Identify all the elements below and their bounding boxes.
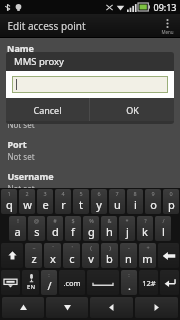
button[interactable]: z xyxy=(25,243,42,268)
staticText: d xyxy=(52,224,59,239)
staticText: Not set xyxy=(7,151,35,162)
staticText: APN xyxy=(7,74,27,86)
button[interactable]: x xyxy=(44,243,61,268)
staticText: q xyxy=(6,197,13,212)
staticText: y xyxy=(96,197,102,212)
button[interactable]: down xyxy=(46,297,88,318)
button[interactable]: enter xyxy=(160,270,179,295)
button[interactable]: e xyxy=(37,189,53,214)
staticText: / xyxy=(162,217,165,224)
button[interactable]: / xyxy=(41,270,57,295)
button[interactable]: m xyxy=(139,243,156,268)
button[interactable]: a xyxy=(9,216,26,241)
staticText: 3 xyxy=(43,190,47,197)
button[interactable]: left xyxy=(90,297,133,318)
button[interactable]: g xyxy=(83,216,99,241)
staticText: @ xyxy=(34,217,39,224)
button[interactable]: Menu xyxy=(154,14,180,38)
staticText: g xyxy=(88,224,95,239)
staticText: x xyxy=(50,251,56,266)
button[interactable]: f xyxy=(65,216,81,241)
staticText: f xyxy=(71,224,75,239)
staticText: 6 xyxy=(97,190,101,197)
staticText: c xyxy=(69,251,75,266)
staticText: 8 xyxy=(133,190,137,197)
button[interactable]: Username xyxy=(0,166,180,198)
button[interactable]: j xyxy=(119,216,135,241)
button[interactable]: l xyxy=(155,216,171,241)
button[interactable]: . xyxy=(121,270,137,295)
button[interactable]: d xyxy=(47,216,63,241)
staticText: ~ xyxy=(32,244,36,251)
staticText: 5 xyxy=(79,190,83,197)
button[interactable]: n xyxy=(120,243,137,268)
staticText: . xyxy=(128,278,131,293)
staticText: l xyxy=(162,224,165,239)
staticText: # xyxy=(53,217,57,224)
button[interactable] xyxy=(12,76,168,93)
button[interactable]: space xyxy=(87,270,119,295)
staticText: 12# xyxy=(142,278,156,288)
staticText: MMS proxy xyxy=(14,55,64,68)
staticText: m xyxy=(142,251,153,266)
button[interactable]: APN xyxy=(0,70,180,102)
button[interactable]: p xyxy=(163,189,179,214)
staticText: Edit access point xyxy=(7,19,86,33)
staticText: & xyxy=(107,217,112,224)
button[interactable]: Name xyxy=(0,38,180,70)
staticText: r xyxy=(61,197,66,212)
staticText: h xyxy=(106,224,113,239)
staticText: p xyxy=(168,197,175,212)
button[interactable]: o xyxy=(145,189,161,214)
button[interactable]: i xyxy=(127,189,143,214)
staticText: ` xyxy=(52,244,54,251)
button[interactable]: 12# xyxy=(139,270,158,295)
staticText: s xyxy=(34,224,40,239)
button[interactable]: OK xyxy=(90,98,174,121)
staticText: .com xyxy=(63,278,81,288)
staticText: j xyxy=(126,224,129,239)
staticText: : xyxy=(128,271,130,278)
staticText: : xyxy=(48,271,50,278)
button[interactable]: w xyxy=(19,189,35,214)
staticText: Not set xyxy=(7,119,35,130)
staticText: ) xyxy=(109,244,111,251)
button[interactable]: Cancel xyxy=(6,98,89,121)
button[interactable]: back xyxy=(158,243,179,268)
staticText: - xyxy=(128,244,130,251)
button[interactable]: r xyxy=(55,189,71,214)
staticText: % xyxy=(89,217,94,224)
staticText: ( xyxy=(90,244,92,251)
button[interactable]: t xyxy=(73,189,89,214)
staticText: + xyxy=(146,244,150,251)
staticText: 7 xyxy=(115,190,119,197)
button[interactable]: mic xyxy=(22,270,39,295)
button[interactable]: right xyxy=(135,297,178,318)
button[interactable]: v xyxy=(82,243,99,268)
staticText: ! xyxy=(17,217,19,224)
staticText: Port xyxy=(7,138,27,150)
button[interactable]: Port xyxy=(0,134,180,166)
button[interactable]: k xyxy=(137,216,153,241)
button[interactable]: c xyxy=(63,243,80,268)
button[interactable]: q xyxy=(1,189,17,214)
button[interactable]: up xyxy=(2,297,44,318)
staticText: EN xyxy=(27,283,35,291)
staticText: u xyxy=(114,197,121,212)
button[interactable]: .com xyxy=(59,270,85,295)
staticText: / xyxy=(47,278,52,293)
button[interactable]: Proxy xyxy=(0,102,180,134)
staticText: 09:13 xyxy=(153,1,177,13)
button[interactable]: u xyxy=(109,189,125,214)
staticText: 4 xyxy=(61,190,65,197)
staticText: v xyxy=(88,251,94,266)
staticText: b xyxy=(106,251,113,266)
staticText: z xyxy=(31,251,37,266)
button[interactable]: b xyxy=(101,243,118,268)
button[interactable]: kb xyxy=(1,270,20,295)
button[interactable]: y xyxy=(91,189,107,214)
button[interactable]: s xyxy=(28,216,45,241)
button[interactable]: h xyxy=(101,216,117,241)
button[interactable]: shift xyxy=(1,243,23,268)
